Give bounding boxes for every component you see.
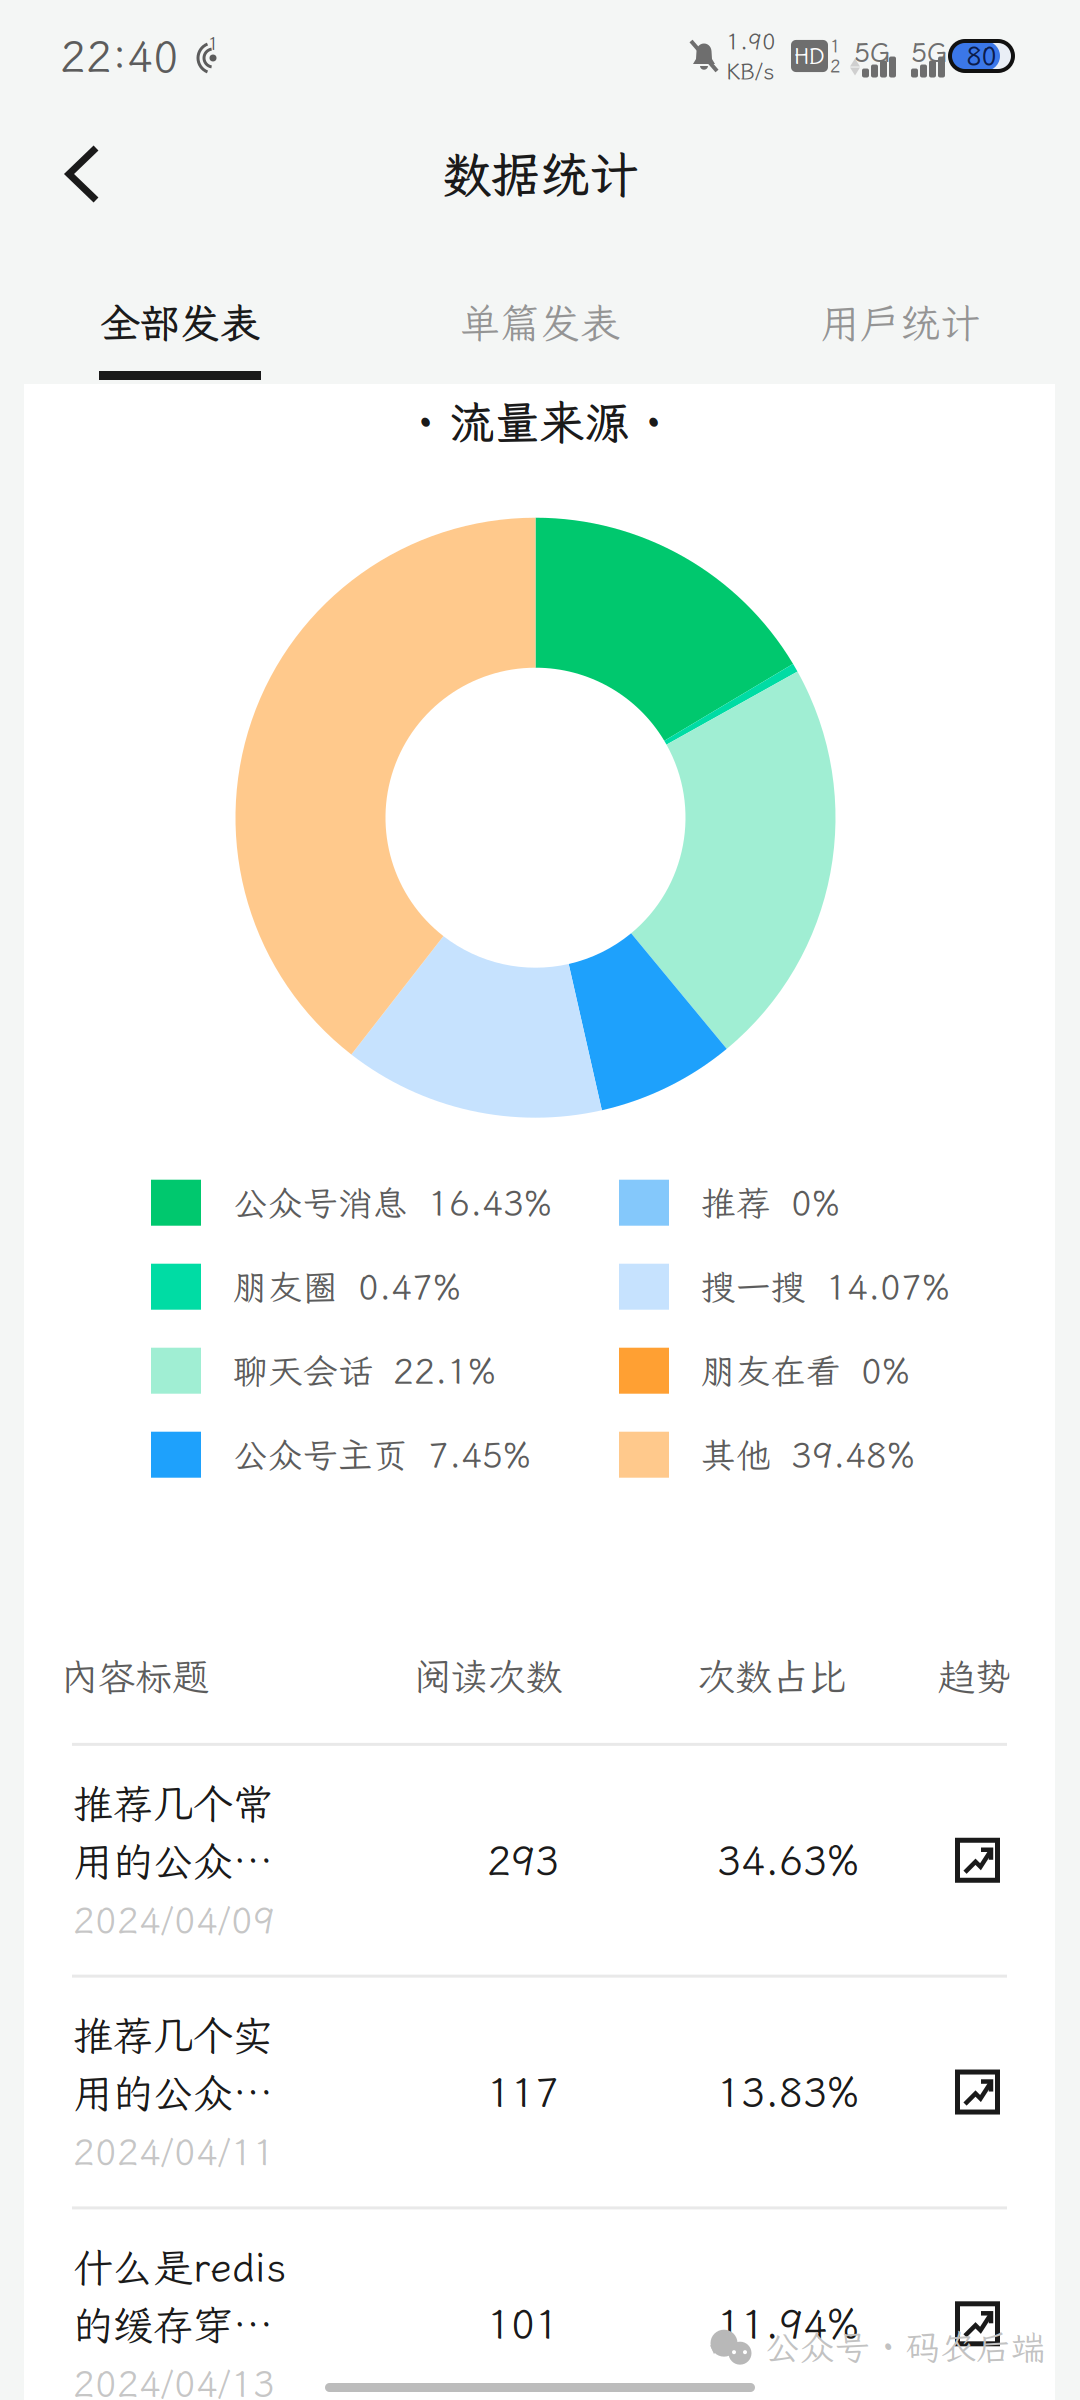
staticText: 2 xyxy=(830,54,840,77)
staticText: 16.43% xyxy=(428,1180,552,1226)
staticText: 推荐几个常 xyxy=(73,1777,273,1830)
staticText: 39.48% xyxy=(791,1432,915,1478)
staticText: 2024/04/13 xyxy=(73,2360,275,2400)
staticText: 0.47% xyxy=(358,1264,461,1310)
staticText: 2024/04/09 xyxy=(73,1896,275,1944)
staticText: HD xyxy=(794,42,825,70)
button[interactable]: 用户统计 xyxy=(720,236,1080,384)
staticText: 搜一搜 xyxy=(701,1264,806,1310)
staticText: 推荐 xyxy=(701,1180,771,1226)
staticText: 内容标题 xyxy=(61,1652,209,1701)
staticText: 1 xyxy=(207,31,218,55)
staticText: 用户统计 xyxy=(820,296,980,349)
staticText: 117 xyxy=(487,2066,559,2118)
staticText: 其他 xyxy=(701,1432,771,1478)
staticText: 次数占比 xyxy=(697,1652,845,1701)
staticText: 80 xyxy=(966,39,996,73)
staticText: 什么是redis xyxy=(73,2240,286,2293)
staticText: KB/s xyxy=(726,56,775,86)
staticText: 用的公众… xyxy=(73,1835,273,1887)
staticText: 34.63% xyxy=(717,1834,859,1887)
staticText: 的缓存穿… xyxy=(73,2298,273,2351)
staticText: 单篇发表 xyxy=(460,296,620,349)
staticText: 0% xyxy=(791,1180,840,1226)
staticText: · 流量来源 · xyxy=(417,392,661,452)
staticText: 聊天会话 xyxy=(233,1348,373,1394)
staticText: 13.83% xyxy=(717,2066,859,2118)
staticText: 数据统计 xyxy=(442,141,638,206)
staticText: 5G xyxy=(854,34,890,70)
staticText: 推荐几个实 xyxy=(73,2009,273,2061)
button[interactable]: 全部发表 xyxy=(0,236,360,384)
staticText: 1.90 xyxy=(726,26,776,56)
staticText: 公众号 · 码农后端 xyxy=(765,2324,1046,2370)
staticText: 公众号主页 xyxy=(233,1432,408,1478)
staticText: 14.07% xyxy=(826,1264,950,1310)
button[interactable]: 什么是redis xyxy=(24,2209,1055,2400)
button[interactable]: 推荐几个实 xyxy=(24,1978,1055,2206)
staticText: 2024/04/11 xyxy=(73,2128,275,2175)
staticText: 5G xyxy=(911,34,947,70)
button[interactable]: Back xyxy=(32,116,133,232)
staticText: 22.1% xyxy=(393,1348,496,1394)
staticText: 7.45% xyxy=(428,1432,531,1478)
staticText: 11.94% xyxy=(717,2297,859,2350)
staticText: 趋势 xyxy=(938,1652,1012,1701)
staticText: 22:40 xyxy=(60,28,179,84)
staticText: 1 xyxy=(830,35,840,57)
staticText: 公众号消息 xyxy=(233,1180,408,1226)
staticText: 朋友圈 xyxy=(233,1264,338,1310)
staticText: 293 xyxy=(487,1834,559,1887)
staticText: 用的公众… xyxy=(73,2066,273,2119)
staticText: 全部发表 xyxy=(100,296,260,349)
staticText: 朋友在看 xyxy=(701,1348,841,1394)
staticText: 101 xyxy=(487,2297,559,2350)
staticText: 阅读次数 xyxy=(414,1652,562,1701)
button[interactable]: 单篇发表 xyxy=(360,236,720,384)
button[interactable]: 推荐几个常 xyxy=(24,1746,1055,1975)
staticText: 0% xyxy=(861,1348,910,1394)
